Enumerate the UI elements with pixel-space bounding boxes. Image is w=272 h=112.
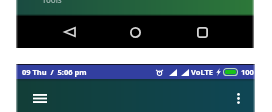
staticText: VoLTE <box>191 67 213 77</box>
button[interactable]: Navigation menu <box>29 87 51 109</box>
button[interactable]: Recent apps <box>191 21 213 43</box>
staticText: Tools <box>42 0 62 5</box>
button[interactable]: Home <box>124 21 146 43</box>
staticText: 100 <box>241 67 254 77</box>
button[interactable]: Back <box>58 21 80 43</box>
button[interactable]: More options <box>227 87 249 109</box>
staticText: 09 Thu / 5:06 pm <box>22 67 87 77</box>
